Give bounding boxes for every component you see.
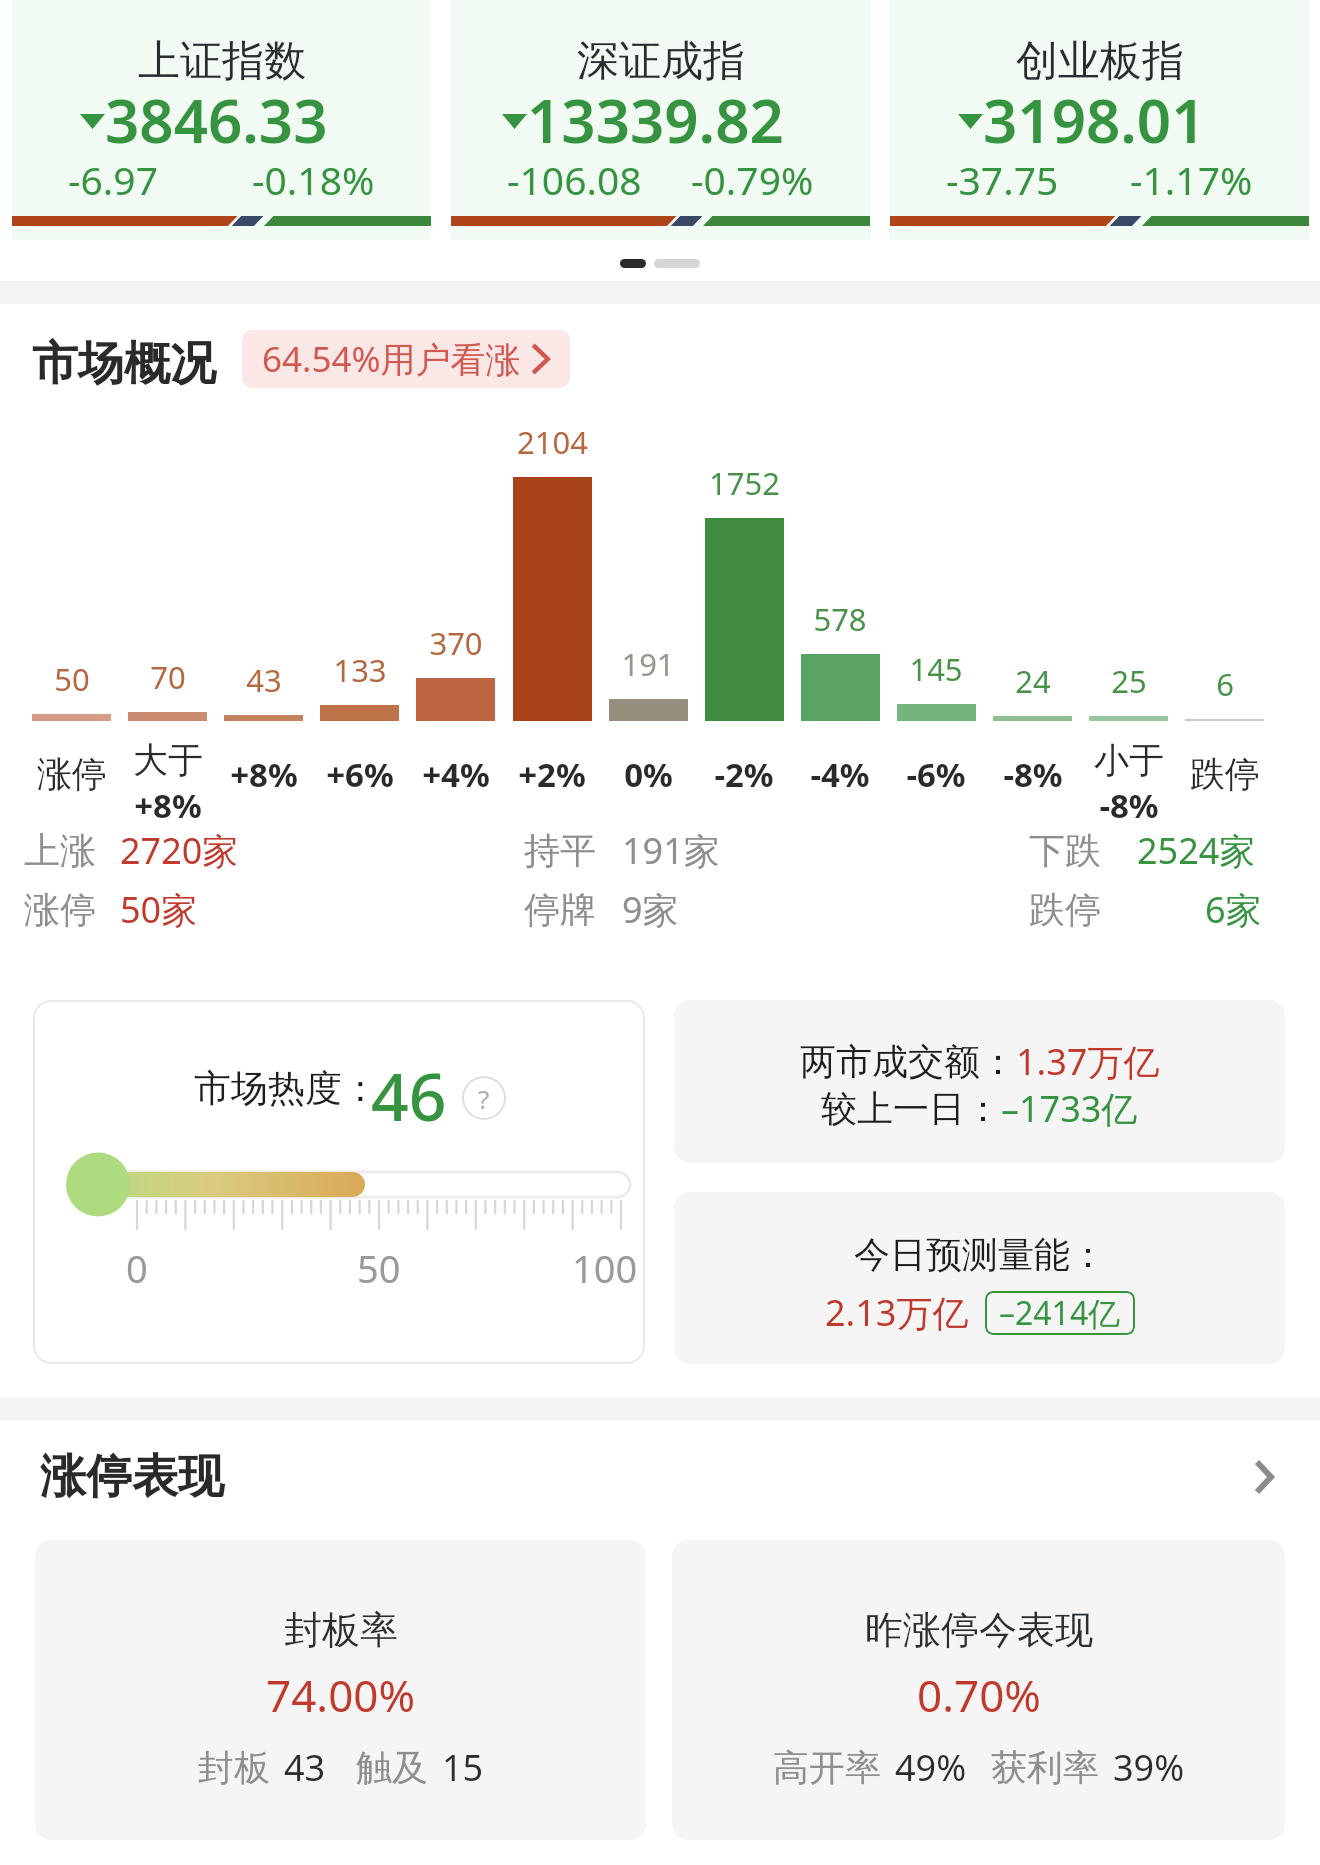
staticText: +8%	[230, 752, 298, 797]
staticText: -4%	[810, 752, 870, 797]
staticText: 小于	[1094, 738, 1164, 782]
staticText: 今日预测量能：	[854, 1232, 1106, 1277]
staticText: 2720家	[120, 826, 239, 875]
button[interactable]: 上证指数	[12, 0, 431, 242]
staticText: 15	[442, 1743, 484, 1792]
staticText: -0.18%	[252, 153, 375, 206]
staticText: +8%	[134, 783, 202, 828]
staticText: 370	[429, 622, 483, 664]
staticText: 50	[357, 1242, 401, 1294]
staticText: 50	[54, 658, 90, 700]
staticText: 2104	[517, 421, 588, 463]
staticText: 145	[909, 648, 963, 690]
button[interactable]: 创业板指	[890, 0, 1309, 242]
staticText: -1.17%	[1130, 153, 1253, 206]
staticText: -106.08	[507, 153, 642, 206]
staticText: 191家	[622, 826, 720, 875]
staticText: 触及	[356, 1745, 428, 1790]
staticText: 9家	[622, 885, 679, 934]
staticText: +2%	[518, 752, 586, 797]
staticText: 0%	[624, 752, 673, 797]
button[interactable]: 64.54%用户看涨	[242, 330, 570, 388]
staticText: 46	[371, 1050, 447, 1140]
staticText: 1.37万亿	[1016, 1037, 1160, 1086]
staticText: 13339.82	[527, 79, 784, 161]
staticText: 1752	[709, 462, 780, 504]
staticText: 0.70%	[917, 1665, 1041, 1725]
staticText: 6	[1216, 663, 1234, 705]
staticText: 43	[246, 659, 282, 701]
staticText: 578	[813, 598, 867, 640]
staticText: -0.79%	[691, 153, 814, 206]
staticText: 创业板指	[1016, 35, 1184, 88]
staticText: 0	[126, 1242, 148, 1294]
staticText: 封板	[198, 1745, 270, 1790]
staticText: 100	[572, 1242, 638, 1294]
staticText: 大于	[133, 738, 203, 782]
staticText: 上证指数	[138, 35, 306, 88]
staticText: 64.54%用户看涨	[262, 335, 521, 383]
staticText: 24	[1015, 660, 1051, 702]
staticText: +4%	[422, 752, 490, 797]
button[interactable]: 昨涨停今表现	[672, 1540, 1285, 1840]
staticText: –2414亿	[999, 1291, 1121, 1335]
staticText: 市场概况	[32, 335, 216, 393]
staticText: 2524家	[1137, 826, 1256, 875]
staticText: 跌停	[1190, 752, 1260, 796]
staticText: 50家	[120, 885, 198, 934]
staticText: -8%	[1003, 752, 1063, 797]
staticText: 高开率	[773, 1745, 881, 1790]
staticText: 停牌	[524, 887, 596, 932]
staticText: 74.00%	[266, 1665, 416, 1725]
other: 更多	[1254, 1459, 1274, 1495]
staticText: -6.97	[68, 153, 158, 206]
staticText: 持平	[524, 828, 596, 873]
staticText: 25	[1111, 660, 1147, 702]
button[interactable]: 涨停表现	[40, 1448, 1274, 1506]
staticText: 获利率	[991, 1745, 1099, 1790]
staticText: 43	[284, 1743, 326, 1792]
staticText: -8%	[1099, 783, 1159, 828]
staticText: 两市成交额：	[800, 1039, 1016, 1084]
staticText: 市场热度：	[194, 1065, 379, 1112]
staticText: 深证成指	[577, 35, 745, 88]
staticText: 3198.01	[983, 79, 1206, 161]
staticText: 较上一日：	[821, 1086, 1001, 1131]
staticText: 涨停	[37, 752, 107, 796]
staticText: 上涨	[24, 828, 96, 873]
button[interactable]: 封板率	[35, 1540, 646, 1840]
staticText: 跌停	[1029, 887, 1101, 932]
button[interactable]: 市场热度：	[33, 1000, 645, 1364]
staticText: 昨涨停今表现	[865, 1606, 1093, 1654]
staticText: 6家	[1205, 885, 1262, 934]
button[interactable]: 说明	[462, 1076, 506, 1120]
staticText: ?	[478, 1081, 490, 1116]
button[interactable]: 今日预测量能：	[674, 1192, 1285, 1364]
staticText: 3846.33	[105, 79, 328, 161]
button[interactable]: 深证成指	[451, 0, 870, 242]
staticText: -2%	[714, 752, 774, 797]
staticText: -37.75	[946, 153, 1059, 206]
staticText: 涨停表现	[40, 1448, 224, 1506]
staticText: –1733亿	[1001, 1084, 1138, 1133]
button[interactable]: 两市成交额：	[674, 1000, 1285, 1163]
staticText: 49%	[895, 1743, 967, 1792]
staticText: 2.13万亿	[825, 1288, 969, 1337]
staticText: 191	[621, 643, 675, 685]
staticText: 封板率	[284, 1606, 398, 1654]
staticText: 下跌	[1029, 828, 1101, 873]
staticText: 涨停	[24, 887, 96, 932]
staticText: 70	[150, 656, 186, 698]
staticText: -6%	[906, 752, 966, 797]
staticText: 133	[333, 649, 387, 691]
staticText: 39%	[1113, 1743, 1185, 1792]
staticText: +6%	[326, 752, 394, 797]
